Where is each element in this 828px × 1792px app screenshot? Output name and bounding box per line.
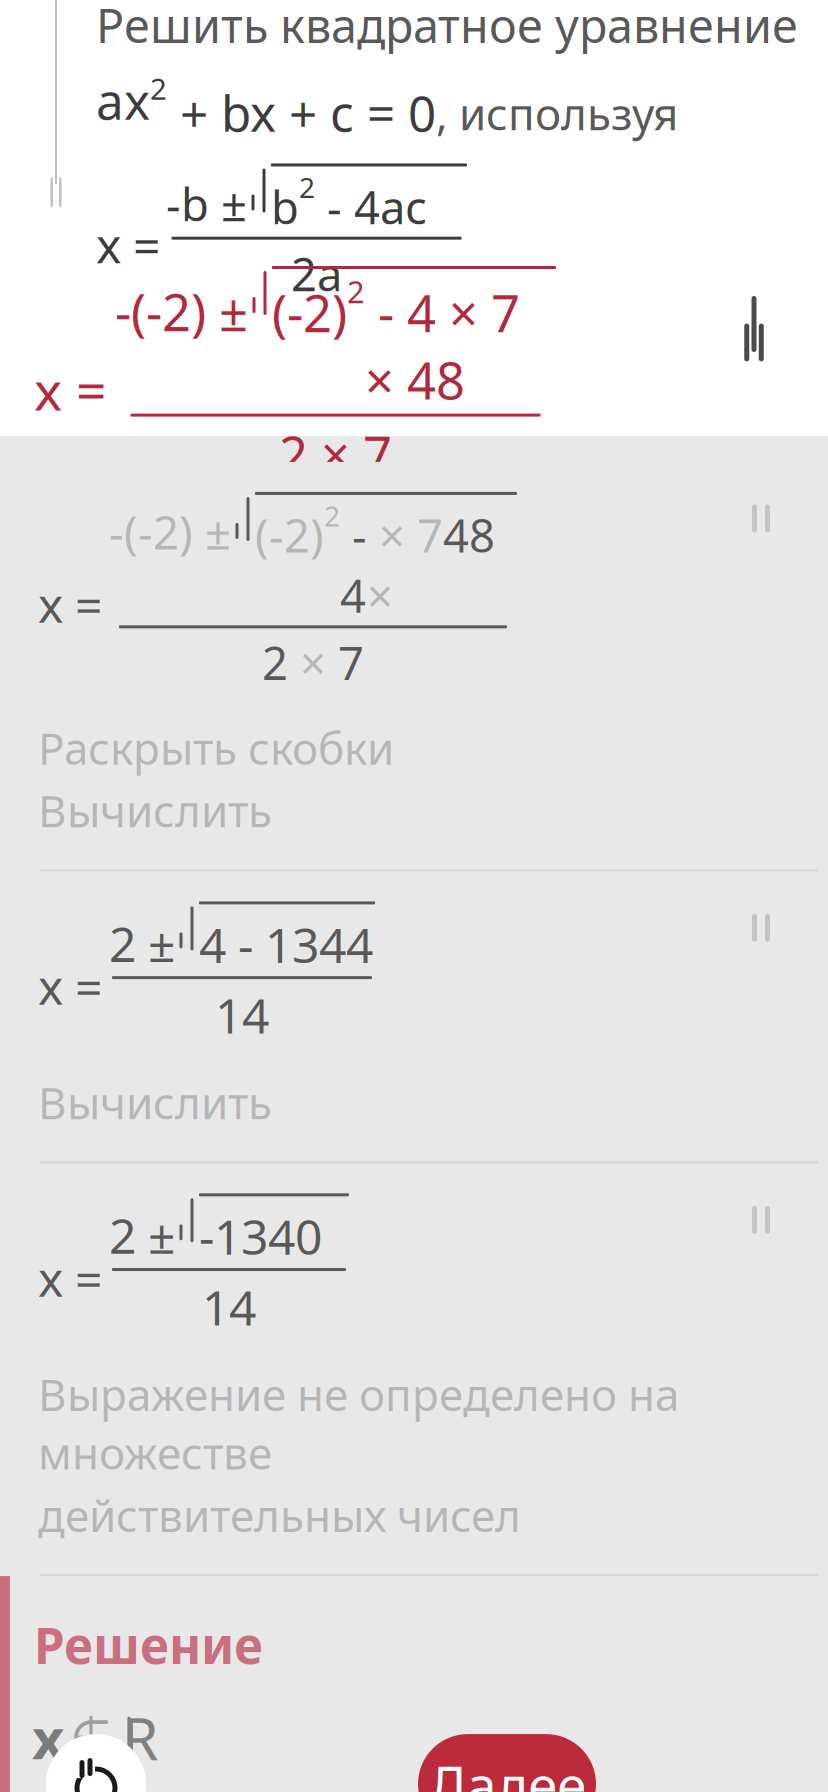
- staticText: Решить квадратное уравнение: [96, 0, 798, 56]
- staticText: Выражение не определено на множестве: [38, 1365, 679, 1482]
- staticText: (-2): [255, 505, 324, 565]
- staticText: ×: [288, 632, 338, 692]
- staticText: Вычислить: [38, 1073, 272, 1131]
- staticText: x =: [96, 213, 160, 276]
- staticText: 2 × 7: [279, 421, 392, 488]
- staticText: (-2): [272, 279, 347, 346]
- staticText: Далее: [428, 1749, 586, 1792]
- staticText: - 4ac: [315, 176, 427, 237]
- staticText: , используя: [436, 84, 678, 142]
- staticText: R: [122, 1699, 158, 1776]
- button[interactable]: x =: [0, 1163, 828, 1574]
- staticText: 14: [202, 1275, 256, 1339]
- staticText: ∈: [70, 1710, 112, 1765]
- staticText: + bx + c = 0: [167, 80, 436, 145]
- button[interactable]: Undo: [46, 1734, 146, 1792]
- staticText: 2 ±: [109, 911, 175, 975]
- staticText: ax: [96, 68, 150, 133]
- staticText: 2: [324, 497, 340, 534]
- staticText: 2: [347, 271, 365, 312]
- staticText: 4 - 1344: [199, 912, 373, 976]
- staticText: Вычислить: [38, 781, 272, 839]
- staticText: 2 ±: [109, 1203, 175, 1267]
- button[interactable]: Next step: [706, 280, 802, 376]
- staticText: 14: [215, 983, 269, 1047]
- button[interactable]: Далее: [418, 1734, 596, 1792]
- staticText: 2a: [291, 244, 342, 304]
- staticText: 48: [443, 505, 495, 565]
- staticText: x: [32, 1700, 64, 1775]
- staticText: Решение: [34, 1612, 263, 1678]
- staticText: b: [271, 176, 299, 237]
- staticText: x =: [38, 572, 102, 636]
- staticText: - 4 × 7 × 48: [365, 279, 520, 414]
- staticText: -b ±: [166, 173, 247, 234]
- staticText: - 4: [340, 505, 367, 625]
- staticText: x =: [38, 1246, 102, 1310]
- staticText: действительных чисел: [38, 1486, 521, 1544]
- staticText: 2: [299, 168, 315, 206]
- button[interactable]: x =: [0, 462, 828, 869]
- staticText: x =: [38, 954, 102, 1018]
- staticText: x =: [34, 354, 107, 425]
- staticText: 2: [262, 632, 288, 692]
- staticText: × 7 ×: [367, 505, 443, 625]
- staticText: -(-2) ±: [115, 278, 248, 345]
- staticText: Раскрыть скобки: [38, 718, 394, 777]
- staticText: -(-2) ±: [109, 502, 231, 562]
- staticText: 2: [150, 69, 167, 108]
- staticText: 7: [338, 632, 364, 692]
- staticText: -1340: [199, 1204, 322, 1268]
- button[interactable]: x =: [0, 871, 828, 1161]
